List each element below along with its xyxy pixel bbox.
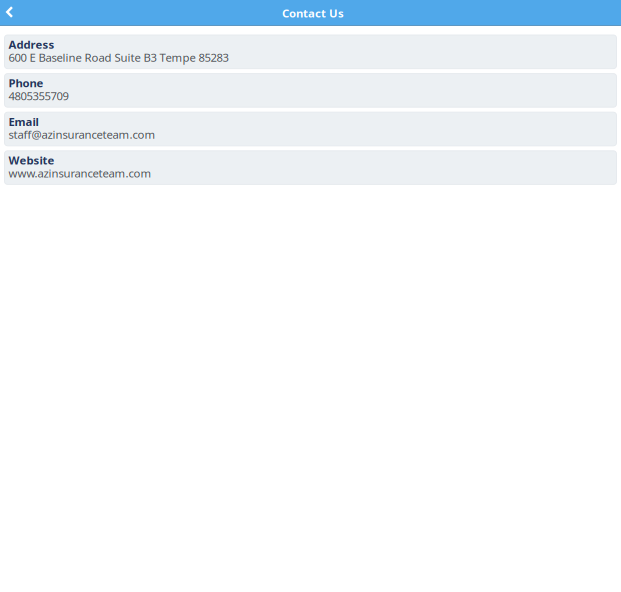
staticText: 600 E Baseline Road Suite B3 Tempe 85283 (8, 49, 228, 65)
staticText: Contact Us (282, 5, 344, 21)
staticText: Address (8, 37, 54, 52)
staticText: Phone (8, 75, 43, 91)
button[interactable]: Website (4, 151, 616, 184)
button[interactable]: Address (4, 35, 616, 69)
staticText: Website (8, 152, 54, 168)
staticText: 4805355709 (8, 88, 68, 103)
button[interactable]: Phone (4, 74, 616, 107)
button[interactable]: Email (4, 112, 616, 146)
button[interactable]: Back (0, 0, 19, 26)
staticText: staff@azinsuranceteam.com (8, 127, 155, 142)
staticText: Email (8, 114, 38, 129)
staticText: www.azinsuranceteam.com (8, 165, 151, 181)
